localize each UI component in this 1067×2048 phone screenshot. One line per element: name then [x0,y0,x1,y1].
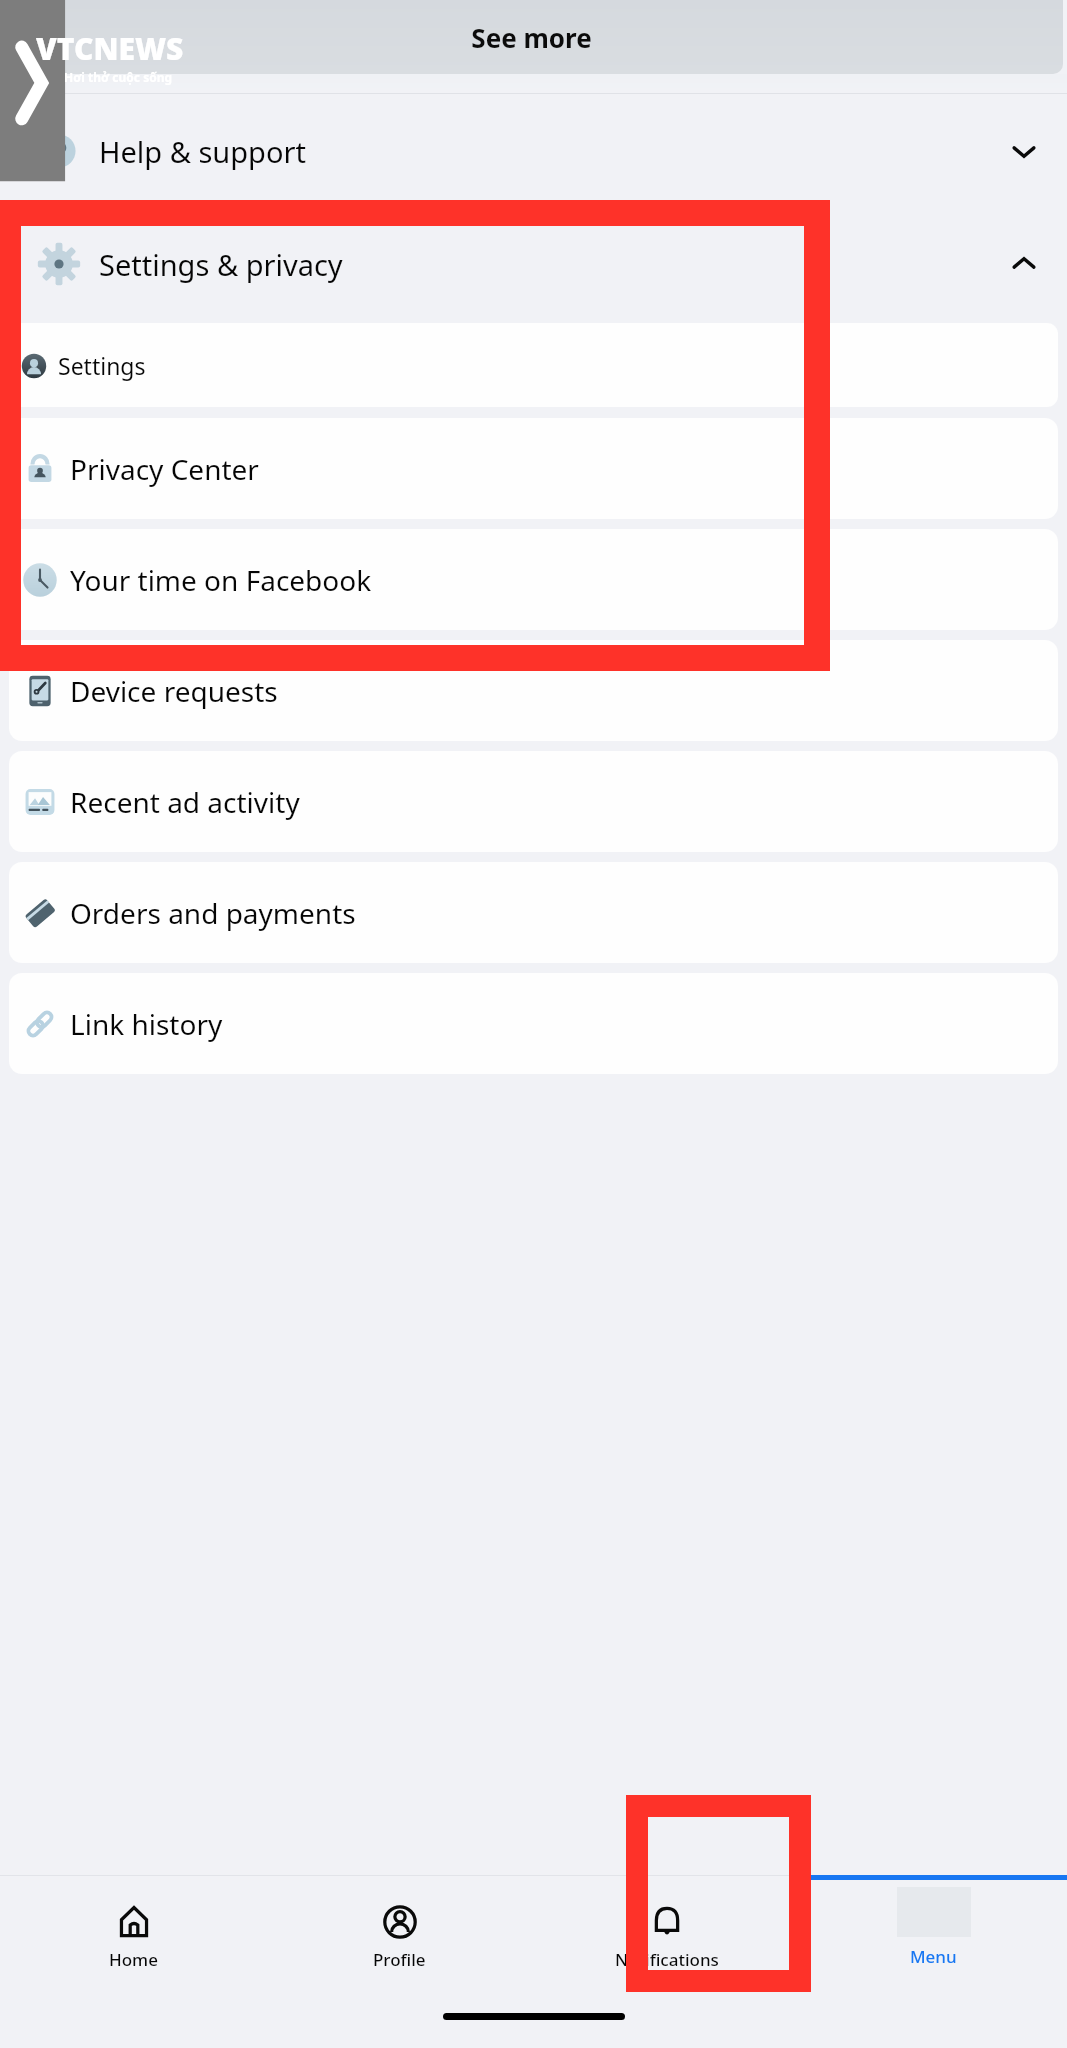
staticText: Notifications [615,1948,719,1971]
staticText: Settings & privacy [99,245,1011,284]
button[interactable]: Orders and payments [9,862,1058,963]
staticText: Privacy Center [70,450,259,488]
button[interactable]: Notifications [533,1875,800,1992]
button[interactable]: Help & support [0,94,1067,207]
button[interactable]: Privacy Center [9,418,1058,519]
staticText: Hơi thở cuộc sống [64,69,173,85]
button[interactable]: Your time on Facebook [9,529,1058,630]
staticText: See more [471,20,592,55]
staticText: Help & support [99,132,1011,171]
staticText: Home [109,1948,158,1971]
button[interactable]: Recent ad activity [9,751,1058,852]
staticText: Menu [910,1945,957,1968]
button[interactable]: Device requests [9,640,1058,741]
staticText: VTCNEWS [36,28,184,69]
button[interactable]: Profile [266,1875,533,1992]
staticText: Orders and payments [70,894,356,932]
button[interactable]: Home [0,1875,266,1992]
staticText: Profile [373,1948,426,1971]
staticText: Link history [70,1005,223,1043]
button[interactable]: Menu [800,1875,1067,1992]
button[interactable]: Settings & privacy [0,207,1067,320]
staticText: Device requests [70,672,278,710]
button[interactable]: Settings [9,323,1058,407]
staticText: Recent ad activity [70,783,300,821]
staticText: Settings [58,350,146,381]
staticText: Your time on Facebook [70,561,372,599]
button[interactable]: Link history [9,973,1058,1074]
